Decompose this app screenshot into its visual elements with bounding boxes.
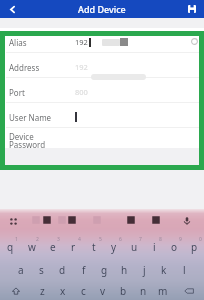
staticText: j (143, 263, 146, 277)
staticText: 192 (75, 62, 88, 72)
button[interactable]: Address (0, 53, 204, 77)
button[interactable]: s (31, 257, 52, 280)
staticText: k (161, 263, 167, 277)
button[interactable]: Backspace (173, 280, 204, 300)
staticText: g (101, 263, 108, 277)
staticText: 192 (75, 37, 88, 47)
staticText: q (7, 240, 14, 254)
staticText: h (121, 263, 128, 277)
button[interactable]: Alias (0, 28, 204, 52)
staticText: 7 (139, 236, 142, 243)
button[interactable]: v (93, 280, 113, 300)
button[interactable]: r (63, 234, 84, 257)
staticText: 9 (179, 236, 182, 243)
button[interactable]: y (104, 234, 124, 257)
staticText: o (171, 240, 178, 254)
button[interactable]: x (53, 280, 73, 300)
button[interactable]: f (73, 257, 94, 280)
button[interactable]: Keyboard menu (7, 215, 19, 227)
staticText: d (59, 263, 66, 277)
staticText: m (158, 284, 168, 298)
button[interactable]: Save (176, 0, 204, 18)
button[interactable]: q (0, 234, 21, 257)
button[interactable]: Back (0, 0, 25, 18)
button[interactable]: Device Password (0, 128, 204, 148)
staticText: f (82, 263, 86, 277)
staticText: i (153, 240, 156, 254)
button[interactable]: o (164, 234, 184, 257)
button[interactable]: c (73, 280, 93, 300)
staticText: t (92, 240, 96, 254)
button[interactable]: z (32, 280, 53, 300)
staticText: 6 (119, 236, 122, 243)
button[interactable]: i (144, 234, 164, 257)
staticText: 800 (75, 87, 88, 97)
staticText: e (50, 240, 56, 254)
button[interactable]: u (124, 234, 144, 257)
staticText: Device Password (9, 131, 65, 150)
button[interactable]: d (52, 257, 73, 280)
staticText: n (140, 284, 147, 298)
button[interactable]: t (84, 234, 104, 257)
button[interactable]: b (113, 280, 133, 300)
button[interactable]: Shift (0, 280, 32, 300)
staticText: 3 (57, 236, 60, 243)
button[interactable]: j (134, 257, 154, 280)
staticText: y (111, 240, 117, 254)
staticText: l (183, 263, 186, 277)
button[interactable]: a (10, 257, 31, 280)
button[interactable]: p (184, 234, 204, 257)
button[interactable]: h (114, 257, 134, 280)
staticText: x (60, 284, 66, 298)
staticText: User Name (9, 112, 65, 123)
staticText: u (131, 240, 138, 254)
staticText: Address (9, 62, 65, 73)
staticText: 8 (159, 236, 162, 243)
staticText: a (18, 263, 24, 277)
staticText: r (71, 240, 76, 254)
button[interactable]: k (154, 257, 174, 280)
staticText: 2 (36, 236, 39, 243)
staticText: v (100, 284, 106, 298)
staticText: p (191, 240, 198, 254)
button[interactable]: g (94, 257, 114, 280)
button[interactable]: l (174, 257, 194, 280)
staticText: c (81, 284, 86, 298)
button[interactable]: Port (0, 78, 204, 102)
staticText: w (28, 240, 36, 254)
button[interactable]: User Name (0, 103, 204, 127)
button[interactable]: Voice input (181, 215, 193, 227)
staticText: Alias (9, 37, 65, 48)
staticText: 5 (99, 236, 102, 243)
button[interactable]: m (153, 280, 173, 300)
staticText: z (40, 284, 45, 298)
staticText: Port (9, 87, 65, 98)
staticText: b (120, 284, 127, 298)
staticText: Add Device (78, 3, 126, 15)
button[interactable]: w (21, 234, 42, 257)
button[interactable]: e (42, 234, 63, 257)
staticText: 1 (15, 236, 18, 243)
staticText: 0 (199, 236, 202, 243)
button[interactable]: n (133, 280, 153, 300)
staticText: s (39, 263, 44, 277)
staticText: 4 (78, 236, 81, 243)
